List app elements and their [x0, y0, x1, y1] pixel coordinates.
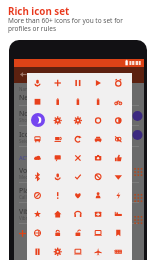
staticText: Name	[19, 86, 32, 92]
staticText: Volume	[19, 166, 44, 176]
staticText: Show notification	[19, 117, 56, 123]
staticText: More than 60+ icons for you to set for p…	[8, 16, 123, 33]
staticText: Notification	[19, 109, 58, 119]
staticText: Media volume	[19, 174, 49, 180]
staticText: ACTIONS	[19, 154, 43, 161]
staticText: Calling tone	[19, 194, 45, 200]
staticText: Vibrate	[19, 207, 43, 217]
staticText: Rich icon set	[8, 5, 70, 18]
staticText: New profile	[19, 93, 57, 103]
staticText: Play sound	[19, 186, 55, 196]
button[interactable]: Night mode	[31, 113, 45, 127]
staticText: Vibration pattern	[19, 215, 56, 221]
staticText: Select icon	[19, 138, 42, 144]
staticText: Icon	[19, 130, 34, 140]
